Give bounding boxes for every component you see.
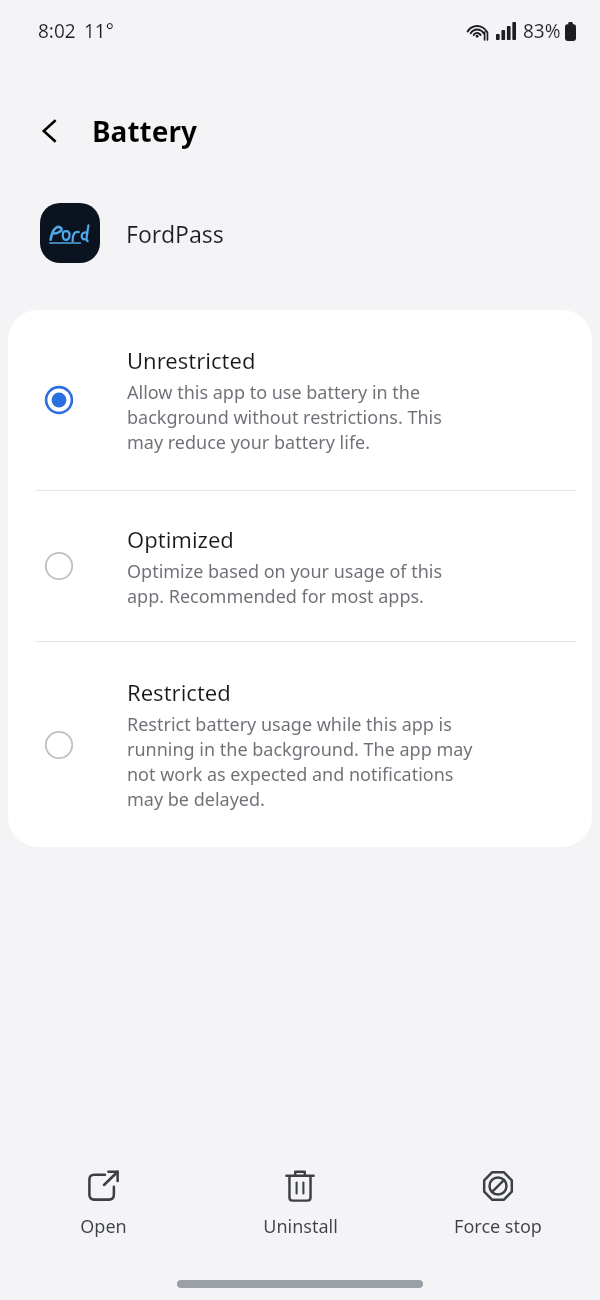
button[interactable]: Unrestricted [8,310,592,490]
staticText: Restricted [127,677,231,707]
button[interactable]: Uninstall [205,1165,395,1243]
staticText: 11° [84,18,114,44]
button[interactable]: Back [22,103,78,159]
staticText: background without restrictions. This [127,405,442,430]
button[interactable]: Open [8,1165,198,1243]
button[interactable]: Force stop [403,1165,593,1243]
button[interactable]: Optimized [8,491,592,641]
button[interactable]: Restricted [8,642,592,847]
staticText: Force stop [454,1214,542,1239]
button[interactable]: FordPass [0,190,600,276]
staticText: Optimize based on your usage of this [127,559,443,584]
staticText: running in the background. The app may [127,737,473,762]
staticText: FordPass [126,218,224,249]
staticText: app. Recommended for most apps. [127,584,424,609]
staticText: Uninstall [263,1214,338,1239]
staticText: Unrestricted [127,345,256,375]
staticText: not work as expected and notifications [127,762,454,787]
staticText: Allow this app to use battery in the [127,380,421,405]
staticText: may be delayed. [127,787,265,812]
staticText: Restrict battery usage while this app is [127,712,452,737]
staticText: 83% [523,18,561,44]
staticText: Open [80,1214,127,1239]
staticText: 8:02 [38,18,76,44]
staticText: may reduce your battery life. [127,430,371,455]
staticText: Battery [92,112,197,150]
staticText: Optimized [127,524,234,554]
